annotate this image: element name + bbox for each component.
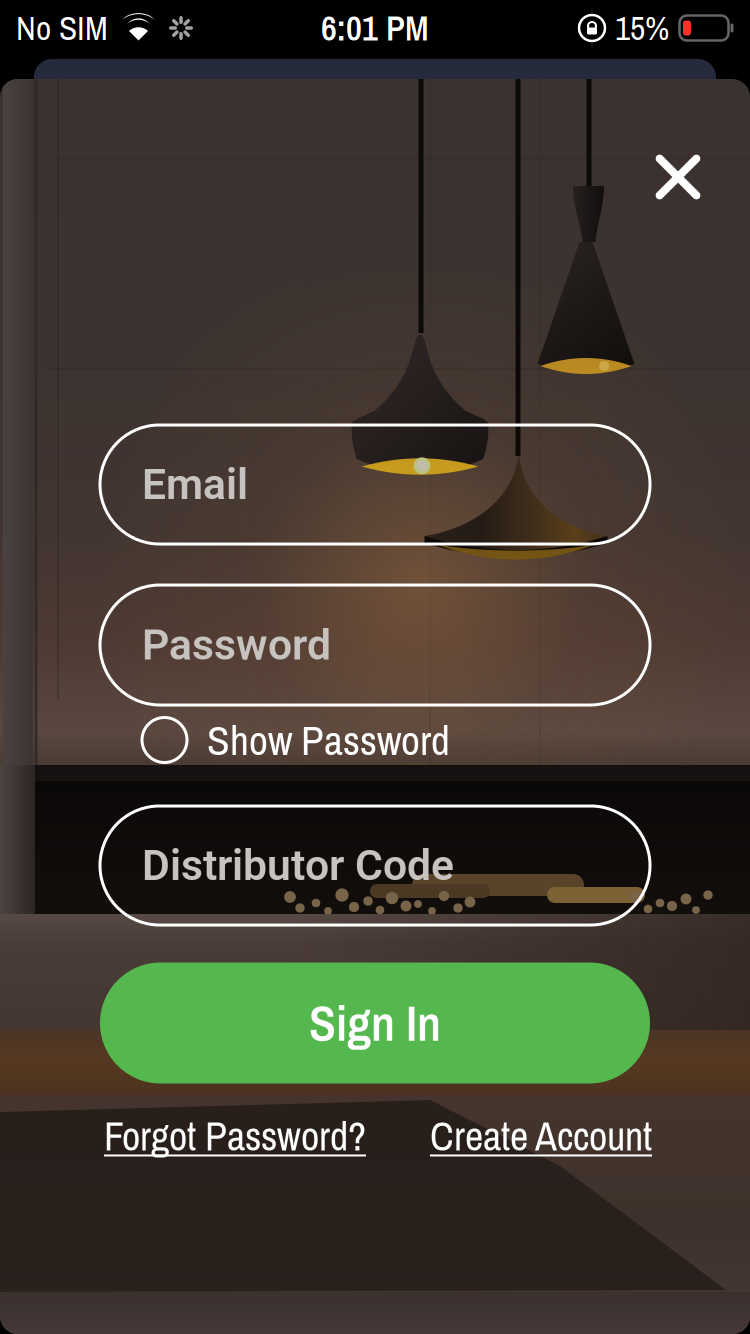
- staticText: Forgot Password?: [104, 1109, 366, 1163]
- staticText: Password: [142, 620, 331, 670]
- staticText: Email: [142, 459, 248, 509]
- button[interactable]: Show Password: [142, 708, 452, 772]
- staticText: No SIM: [16, 6, 108, 50]
- staticText: 6:01 PM: [321, 5, 429, 51]
- button[interactable]: Password: [100, 585, 650, 705]
- button[interactable]: Distributor Code: [100, 806, 650, 925]
- staticText: Distributor Code: [142, 840, 454, 890]
- button[interactable]: Email: [100, 425, 650, 544]
- staticText: 15%: [615, 6, 669, 50]
- staticText: Create Account: [430, 1109, 652, 1163]
- staticText: Show Password: [207, 712, 450, 768]
- button[interactable]: Sign In: [100, 962, 650, 1083]
- staticText: Sign In: [309, 990, 441, 1056]
- button[interactable]: Forgot Password?: [102, 1108, 368, 1164]
- button[interactable]: Close: [628, 127, 728, 227]
- button[interactable]: Create Account: [427, 1108, 655, 1164]
